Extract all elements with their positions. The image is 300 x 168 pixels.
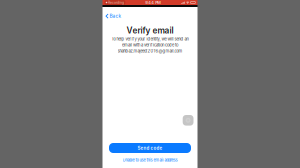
staticText: email with a verification code to: [122, 42, 178, 47]
button[interactable]: AssistiveTouch: [183, 115, 193, 126]
staticText: Verify email: [126, 25, 173, 35]
button[interactable]: Unable to use this email address: [102, 157, 197, 163]
staticText: shahbaz.majeed2016@gmail.com: [117, 48, 182, 53]
button[interactable]: Back: [102, 7, 122, 19]
staticText: Back: [110, 13, 122, 19]
button[interactable]: Send code: [109, 143, 191, 153]
staticText: Recording: [108, 1, 124, 4]
staticText: To help verify your identity, we will se…: [111, 36, 188, 41]
staticText: Unable to use this email address: [122, 157, 177, 162]
staticText: 9:44 PM: [145, 0, 161, 5]
staticText: Send code: [137, 145, 162, 151]
